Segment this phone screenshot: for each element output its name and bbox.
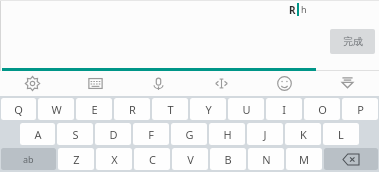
staticText: Z — [73, 152, 80, 167]
staticText: A — [34, 127, 42, 142]
button[interactable]: A — [20, 123, 55, 145]
staticText: M — [299, 152, 309, 167]
staticText: I — [282, 102, 286, 117]
button[interactable]: P — [342, 98, 378, 120]
staticText: P — [357, 102, 364, 117]
button[interactable]: E — [76, 98, 112, 120]
button[interactable]: S — [57, 123, 93, 145]
button[interactable]: Shift / ab — [1, 148, 56, 170]
staticText: h — [301, 3, 307, 15]
staticText: R — [289, 3, 296, 17]
button[interactable]: B — [210, 148, 246, 170]
staticText: G — [185, 127, 194, 142]
button[interactable]: G — [171, 123, 207, 145]
button[interactable]: H — [209, 123, 245, 145]
button[interactable]: U — [228, 98, 264, 120]
staticText: ab — [23, 153, 34, 165]
staticText: X — [111, 152, 118, 167]
button[interactable]: Settings — [0, 71, 64, 96]
button[interactable]: 完成 — [330, 29, 375, 54]
button[interactable]: V — [172, 148, 208, 170]
staticText: U — [242, 102, 251, 117]
staticText: E — [91, 102, 98, 117]
button[interactable]: C — [134, 148, 170, 170]
staticText: S — [72, 127, 79, 142]
staticText: F — [148, 127, 154, 142]
button[interactable]: R — [114, 98, 150, 120]
button[interactable]: M — [286, 148, 322, 170]
staticText: D — [109, 127, 118, 142]
button[interactable]: L — [323, 123, 359, 145]
staticText: V — [187, 152, 194, 167]
staticText: C — [149, 152, 156, 167]
button[interactable]: K — [285, 123, 321, 145]
button[interactable]: Backspace — [324, 148, 378, 170]
staticText: 完成 — [343, 35, 363, 48]
button[interactable]: O — [304, 98, 340, 120]
staticText: B — [224, 152, 232, 167]
button[interactable]: F — [133, 123, 169, 145]
staticText: T — [167, 102, 174, 117]
staticText: O — [318, 102, 327, 117]
button[interactable]: D — [95, 123, 131, 145]
button[interactable]: Voice input — [127, 71, 190, 96]
staticText: L — [338, 127, 344, 142]
button[interactable]: Z — [58, 148, 94, 170]
staticText: Y — [205, 102, 212, 117]
button[interactable]: Keyboard layout — [64, 71, 127, 96]
button[interactable]: N — [248, 148, 284, 170]
staticText: K — [300, 127, 307, 142]
button[interactable]: X — [96, 148, 132, 170]
button[interactable]: Q — [1, 98, 36, 120]
button[interactable]: Emoji — [253, 71, 316, 96]
button[interactable]: Hide keyboard — [316, 71, 379, 96]
staticText: W — [51, 102, 62, 117]
button[interactable]: W — [38, 98, 74, 120]
staticText: R — [129, 102, 136, 117]
staticText: N — [262, 152, 271, 167]
staticText: H — [223, 127, 232, 142]
staticText: Q — [14, 102, 23, 117]
button[interactable]: J — [247, 123, 283, 145]
button[interactable]: I — [266, 98, 302, 120]
button[interactable]: T — [152, 98, 188, 120]
button[interactable]: Move cursor — [190, 71, 253, 96]
button[interactable]: Y — [190, 98, 226, 120]
staticText: J — [263, 127, 267, 142]
